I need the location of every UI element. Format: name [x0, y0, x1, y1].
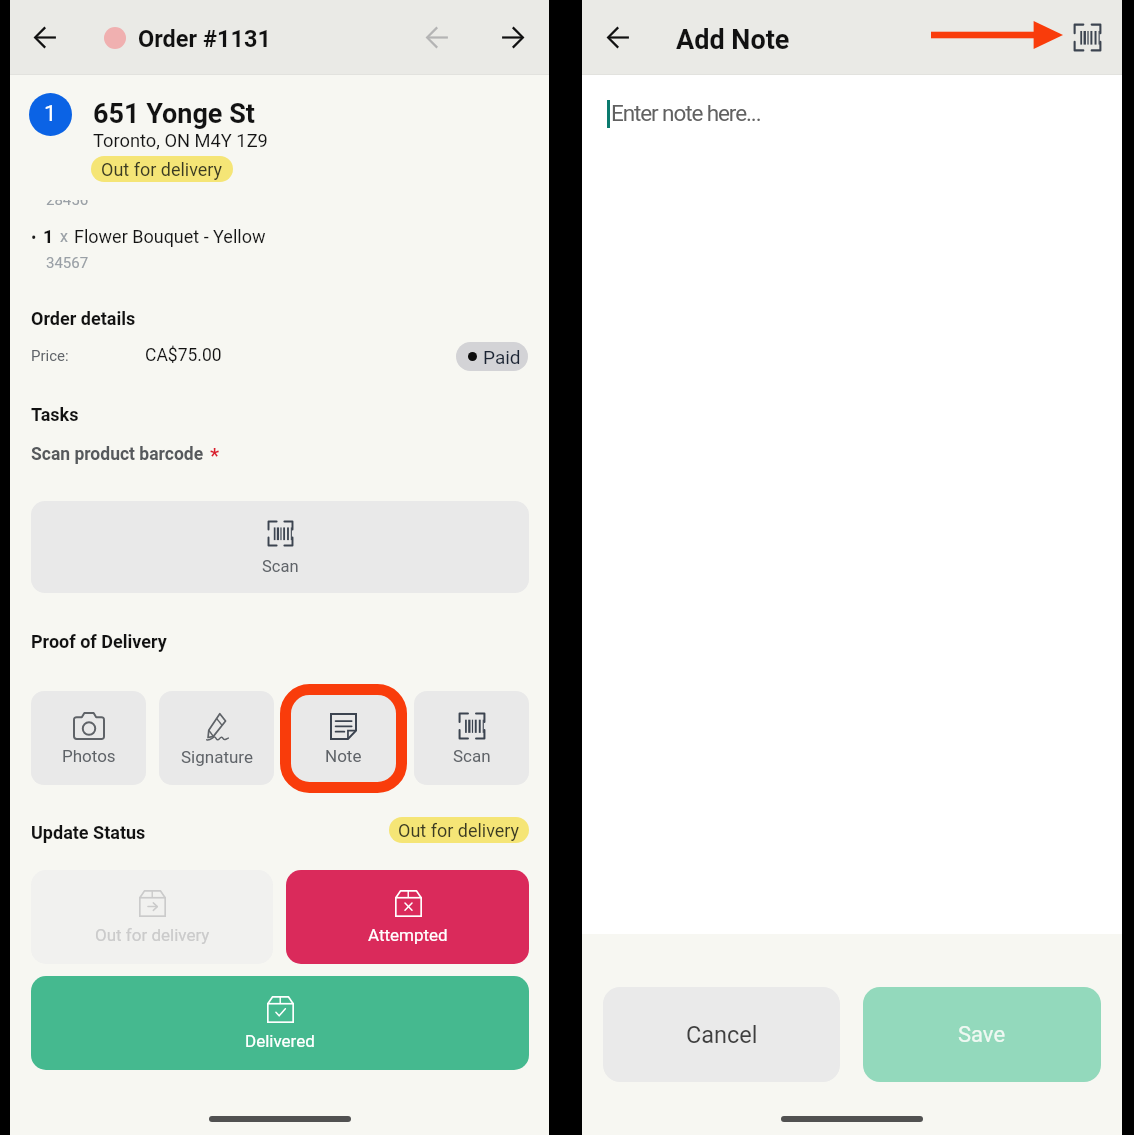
staticText: Scan product barcode	[31, 444, 204, 465]
staticText: Proof of Delivery	[31, 631, 167, 652]
staticText: Out for delivery	[95, 925, 210, 945]
staticText: Enter note here...	[611, 100, 761, 126]
button[interactable]: Attempted	[286, 870, 529, 964]
staticText: Scan	[453, 746, 491, 766]
button[interactable]: Back	[22, 14, 69, 61]
staticText: Add Note	[676, 24, 790, 56]
staticText: x	[60, 227, 68, 246]
staticText: Delivered	[245, 1031, 315, 1051]
staticText: 34567	[46, 254, 89, 272]
button[interactable]: Scan barcode	[1064, 14, 1111, 61]
button[interactable]: Cancel	[603, 987, 840, 1082]
staticText: Save	[958, 1022, 1006, 1048]
staticText: Update Status	[31, 822, 146, 843]
staticText: Attempted	[368, 925, 448, 945]
staticText: Toronto, ON M4Y 1Z9	[93, 130, 268, 151]
staticText: 28456	[46, 200, 89, 206]
button[interactable]: Next order	[489, 14, 536, 61]
staticText: Cancel	[686, 1021, 758, 1049]
staticText: Photos	[62, 746, 116, 766]
button[interactable]: Out for delivery	[389, 817, 529, 843]
staticText: *	[210, 444, 220, 467]
button[interactable]: Scan	[31, 501, 529, 593]
staticText: Flower Bouquet - Yellow	[74, 226, 266, 247]
button[interactable]: Delivered	[31, 976, 529, 1070]
staticText: Out for delivery	[101, 159, 223, 180]
staticText: Order details	[31, 308, 136, 329]
staticText: 1	[43, 226, 54, 247]
button[interactable]: Out for delivery	[31, 870, 273, 964]
staticText: Paid	[483, 346, 521, 368]
staticText: Order #1131	[138, 25, 271, 53]
staticText: Note	[325, 746, 362, 766]
staticText: Price:	[31, 347, 69, 365]
button[interactable]: Back	[595, 14, 642, 61]
button[interactable]: Note	[286, 691, 401, 785]
staticText: CA$75.00	[145, 345, 222, 366]
button[interactable]: Photos	[31, 691, 146, 785]
button[interactable]: Scan	[414, 691, 529, 785]
staticText: 651 Yonge St	[93, 98, 255, 130]
staticText: Tasks	[31, 404, 79, 425]
button[interactable]: Out for delivery	[91, 156, 233, 182]
staticText: 1	[44, 101, 57, 127]
button[interactable]: Save	[863, 987, 1101, 1082]
staticText: Out for delivery	[398, 820, 520, 841]
staticText: Signature	[181, 747, 253, 767]
button[interactable]: Paid	[456, 342, 528, 371]
button[interactable]: Previous order	[414, 14, 461, 61]
staticText: Scan	[262, 557, 299, 576]
staticText: •	[31, 228, 37, 247]
button[interactable]: Signature	[159, 691, 274, 785]
